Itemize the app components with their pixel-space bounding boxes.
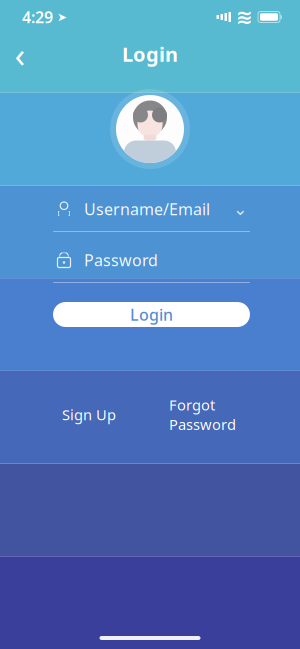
staticText: ⌄ [233, 199, 248, 219]
staticText: Sign Up [62, 405, 116, 424]
button[interactable]: Back [0, 34, 40, 74]
staticText: Password [84, 249, 158, 271]
staticText: Login [130, 304, 173, 325]
staticText: 4:29 [22, 6, 53, 28]
button[interactable]: Sign Up [58, 399, 120, 430]
button[interactable]: Forgot Password [165, 389, 240, 440]
staticText: ➤ [53, 10, 67, 24]
staticText: Login [122, 41, 178, 67]
staticText: Forgot Password [169, 395, 236, 434]
staticText: ‹ [14, 31, 25, 77]
staticText: Username/Email [84, 198, 210, 220]
staticText: ≋ [236, 6, 253, 28]
button[interactable]: Login [53, 302, 250, 327]
